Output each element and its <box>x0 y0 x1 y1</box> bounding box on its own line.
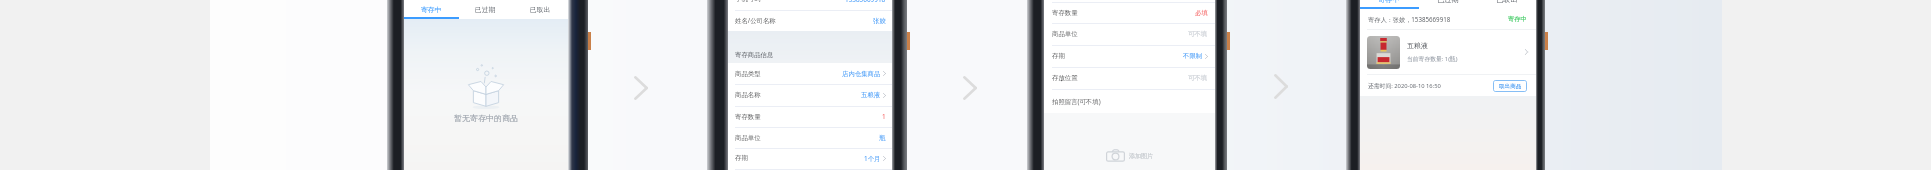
button[interactable]: 拍照留言(可不填) <box>1044 89 1215 114</box>
staticText: 1个月 <box>864 154 881 163</box>
staticText: 张姣 <box>873 17 886 25</box>
staticText: 商品单位 <box>1052 30 1078 38</box>
button[interactable]: 取出商品 <box>1493 80 1527 92</box>
staticText: 寄存中 <box>1508 15 1527 23</box>
staticText: 还需时间: 2020-08-10 16:50 <box>1368 82 1441 90</box>
other: Next <box>963 76 977 100</box>
button[interactable]: 存放位置 <box>1044 67 1215 88</box>
staticText: 商品单位 <box>735 134 761 142</box>
button[interactable]: 已过期 <box>458 0 513 19</box>
button[interactable]: 手机号码 <box>728 0 892 10</box>
staticText: 添加图片 <box>1129 152 1153 160</box>
button[interactable]: 寄存中 <box>404 0 458 19</box>
staticText: 寄存商品信息 <box>735 51 774 59</box>
button[interactable]: 姓名/公司名称 <box>728 10 892 31</box>
staticText: 寄存中 <box>421 5 442 14</box>
staticText: 不限制 <box>1183 52 1203 60</box>
staticText: 商品类型 <box>735 70 761 78</box>
button[interactable]: 五粮液 <box>1367 30 1528 74</box>
button[interactable]: 存期 <box>1044 45 1215 67</box>
staticText: 瓶 <box>879 134 886 142</box>
staticText: 必填 <box>1195 9 1208 17</box>
staticText: 寄存数量 <box>735 113 761 121</box>
button[interactable]: 寄存中 <box>1360 0 1418 9</box>
staticText: 暂无寄存中的商品 <box>454 113 518 123</box>
staticText: 可不填 <box>1188 30 1208 38</box>
staticText: 寄存数量 <box>1052 9 1078 17</box>
staticText: 店内仓集商品 <box>842 70 881 78</box>
other: 添加图片 <box>1106 149 1125 162</box>
staticText: 1 <box>882 112 886 121</box>
staticText: 姓名/公司名称 <box>735 16 776 25</box>
staticText: 存期 <box>1052 52 1065 60</box>
staticText: 已过期 <box>1437 0 1459 4</box>
staticText: 当前寄存数量: 1(瓶) <box>1407 55 1458 63</box>
staticText: 五粮液 <box>861 91 881 99</box>
button[interactable]: 商品单位 <box>728 127 892 148</box>
staticText: 存放位置 <box>1052 74 1078 82</box>
staticText: 已取出 <box>1496 0 1518 4</box>
button[interactable]: 已过期 <box>1418 0 1477 9</box>
button[interactable]: 寄存数量 <box>728 106 892 127</box>
button[interactable]: 寄存人：张姣，15385669918 <box>1368 9 1527 29</box>
staticText: 已取出 <box>530 5 551 14</box>
staticText: 15385669918 <box>845 0 886 4</box>
other: Next <box>1274 74 1288 99</box>
button[interactable]: 已取出 <box>513 0 568 19</box>
button[interactable]: 添加图片 <box>1106 149 1153 162</box>
staticText: 已过期 <box>475 5 496 14</box>
staticText: 商品名称 <box>735 91 761 99</box>
staticText: 手机号码 <box>735 0 761 3</box>
staticText: 存期 <box>735 154 748 162</box>
staticText: 五粮液 <box>1407 41 1428 50</box>
staticText: 寄存人：张姣，15385669918 <box>1368 15 1451 23</box>
staticText: 寄存中 <box>1378 0 1400 4</box>
staticText: 可不填 <box>1188 74 1208 82</box>
button[interactable]: 已取出 <box>1477 0 1536 9</box>
staticText: 取出商品 <box>1499 83 1522 90</box>
button[interactable]: 寄存数量 <box>1044 2 1215 23</box>
other: Next <box>634 76 648 100</box>
button[interactable]: 商品类型 <box>728 63 892 84</box>
button[interactable]: 存期 <box>728 148 892 168</box>
staticText: 拍照留言(可不填) <box>1052 97 1101 106</box>
button[interactable]: 商品名称 <box>728 84 892 106</box>
button[interactable]: 商品单位 <box>1044 23 1215 45</box>
